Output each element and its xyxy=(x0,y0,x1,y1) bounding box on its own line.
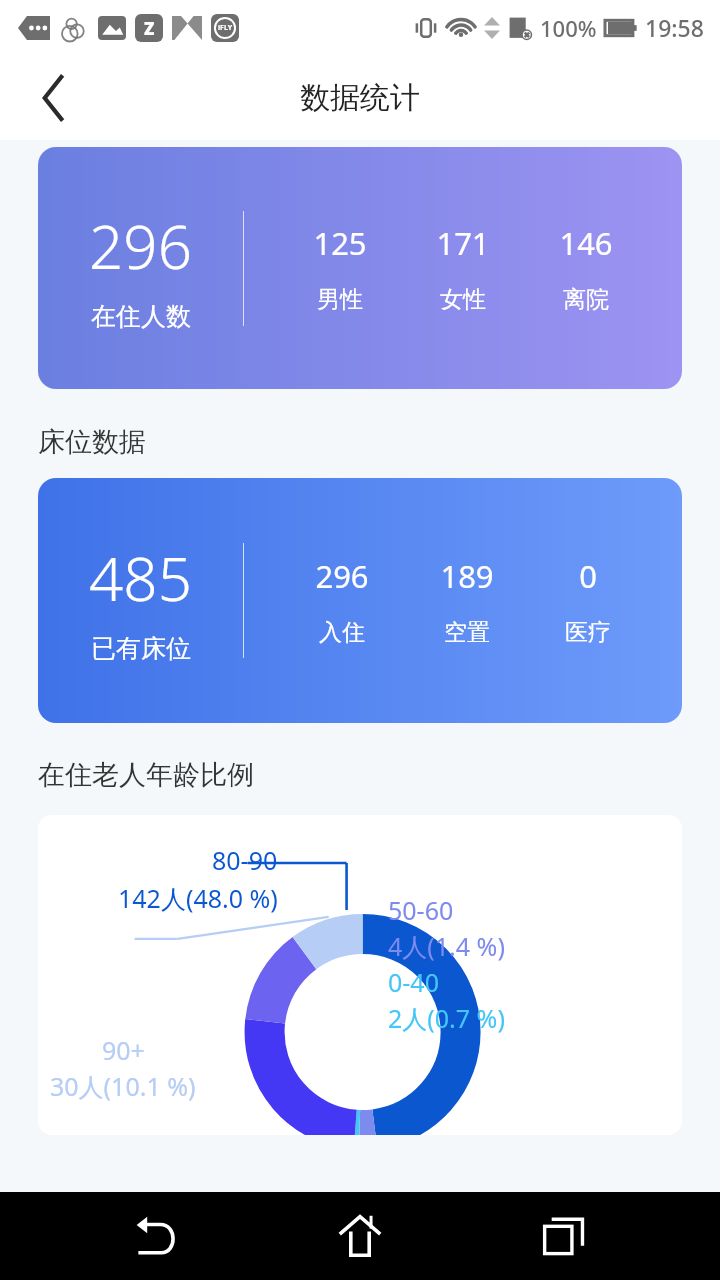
staticText: Z xyxy=(144,17,155,40)
staticText: 床位数据 xyxy=(38,425,146,459)
staticText: iFLY xyxy=(218,23,233,33)
button[interactable]: Back xyxy=(108,1192,204,1280)
staticText: 入住 xyxy=(319,618,365,647)
staticText: 146 xyxy=(559,222,613,264)
staticText: 医疗 xyxy=(565,618,611,647)
staticText: 30人(10.1 %) xyxy=(50,1069,196,1103)
staticText: 19:58 xyxy=(645,12,704,43)
button[interactable]: Home xyxy=(312,1192,408,1280)
staticText: 189 xyxy=(440,555,494,597)
staticText: 485 xyxy=(89,537,192,619)
button[interactable]: 296 xyxy=(38,147,682,389)
staticText: 数据统计 xyxy=(300,79,420,117)
staticText: 离院 xyxy=(563,285,609,314)
staticText: 空置 xyxy=(444,618,490,647)
staticText: 2人(0.7 %) xyxy=(388,1001,505,1035)
staticText: 80-90 xyxy=(212,843,278,877)
staticText: 142人(48.0 %) xyxy=(118,881,278,915)
staticText: 125 xyxy=(313,222,367,264)
staticText: 171 xyxy=(436,222,490,264)
staticText: 4人(1.4 %) xyxy=(388,929,505,963)
button[interactable]: Back xyxy=(22,67,84,129)
button[interactable]: 485 xyxy=(38,478,682,723)
staticText: 100% xyxy=(540,13,597,43)
staticText: 已有床位 xyxy=(91,633,191,664)
staticText: 在住人数 xyxy=(91,301,191,332)
button[interactable]: Recent apps xyxy=(516,1192,612,1280)
staticText: 50-60 xyxy=(388,893,454,927)
staticText: 0 xyxy=(579,555,597,597)
staticText: 男性 xyxy=(317,285,363,314)
button[interactable]: 80-90 xyxy=(38,815,682,1135)
staticText: 90+ xyxy=(50,1033,145,1067)
staticText: 0-40 xyxy=(388,965,439,999)
staticText: 296 xyxy=(89,205,192,287)
staticText: 296 xyxy=(315,555,369,597)
staticText: 在住老人年龄比例 xyxy=(38,758,254,792)
staticText: 女性 xyxy=(440,285,486,314)
